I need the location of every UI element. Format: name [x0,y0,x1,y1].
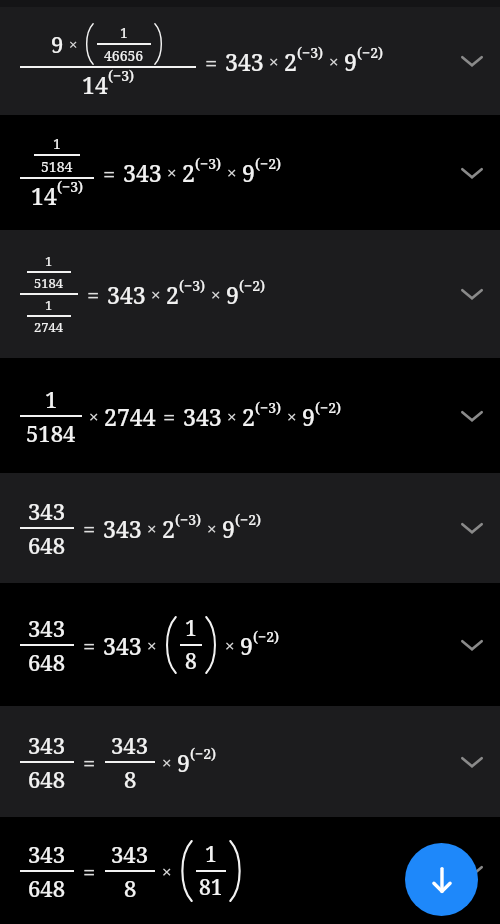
staticText: (−2) [255,154,282,173]
staticText: 343 [28,730,66,760]
button[interactable]: Collapse step [452,153,492,193]
staticText: 2 [182,157,195,188]
staticText: 14 [82,69,108,100]
staticText: 8 [124,873,137,903]
staticText: (−3) [57,177,84,196]
staticText: 343 [111,839,149,869]
staticText: 1 [205,840,217,869]
button[interactable]: Collapse step [452,41,492,81]
staticText: × [147,634,157,657]
staticText: 46656 [104,46,144,65]
button[interactable]: 1 [0,230,500,358]
staticText: 9 [177,747,190,778]
staticText: × [147,517,157,540]
staticText: (−3) [297,43,324,62]
staticText: × [211,283,221,306]
staticText: 648 [28,530,66,560]
staticText: 81 [199,873,223,902]
staticText: × [162,751,172,774]
staticText: × [227,405,237,428]
staticText: 1 [45,252,53,270]
staticText: 5184 [26,418,76,448]
staticText: (−3) [175,510,202,529]
staticText: 343 [225,46,264,77]
staticText: 1 [53,134,61,153]
staticText: × [151,283,161,306]
staticText: 343 [111,730,149,760]
button[interactable]: 343 [0,817,500,924]
staticText: (−2) [190,744,217,763]
staticText: (−2) [239,276,266,295]
staticText: 2 [242,401,255,432]
button[interactable]: 343 [0,473,500,583]
staticText: 343 [103,630,142,661]
staticText: 9 [240,630,253,661]
button[interactable]: Collapse step [452,742,492,782]
staticText: = [83,747,96,777]
staticText: × [69,34,78,54]
staticText: (−3) [179,276,206,295]
button[interactable]: 1 [0,358,500,473]
staticText: 343 [28,613,66,643]
staticText: × [269,50,279,73]
staticText: (−2) [253,627,280,646]
staticText: (−2) [357,43,384,62]
staticText: 14 [31,180,57,211]
button[interactable]: 343 [0,583,500,706]
staticText: 2 [162,513,175,544]
staticText: (−2) [235,510,262,529]
staticText: (−3) [255,398,282,417]
staticText: = [83,856,96,886]
button[interactable]: 343 [0,706,500,817]
staticText: 1 [45,384,58,414]
staticText: 8 [185,647,197,676]
staticText: 2 [166,279,179,310]
staticText: 9 [302,401,315,432]
staticText: × [162,860,172,883]
staticText: × [207,517,217,540]
staticText: = [83,513,96,543]
staticText: 9 [226,279,239,310]
staticText: 648 [28,647,66,677]
staticText: = [103,158,116,188]
staticText: 5184 [41,157,73,176]
staticText: 2 [284,46,297,77]
staticText: = [87,279,100,309]
button[interactable]: Scroll to bottom [405,843,478,916]
staticText: 2744 [34,318,64,336]
staticText: 1 [120,23,128,42]
staticText: 343 [28,839,66,869]
staticText: = [163,401,176,431]
button[interactable]: Collapse step [452,274,492,314]
staticText: × [227,161,237,184]
staticText: 648 [28,873,66,903]
staticText: 2744 [104,401,156,432]
staticText: 9 [242,157,255,188]
staticText: 1 [185,614,197,643]
staticText: 9 [222,513,235,544]
staticText: 9 [344,46,357,77]
staticText: 1 [45,296,53,314]
staticText: 343 [28,496,66,526]
staticText: 648 [28,764,66,794]
button[interactable]: Collapse step [452,508,492,548]
staticText: 5184 [34,274,64,292]
staticText: 343 [107,279,146,310]
staticText: 9 [51,29,64,59]
staticText: (−3) [195,154,222,173]
staticText: × [167,161,177,184]
staticText: × [287,405,297,428]
button[interactable]: Collapse step [452,625,492,665]
staticText: = [205,47,218,77]
staticText: × [225,634,235,657]
staticText: (−3) [108,66,135,85]
button[interactable]: Collapse step [452,396,492,436]
button[interactable]: 1 [0,115,500,230]
staticText: 343 [103,513,142,544]
staticText: = [83,630,96,660]
staticText: × [89,405,99,428]
staticText: (−2) [315,398,342,417]
button[interactable]: 9 [0,7,500,115]
button[interactable]: Collapse step [452,851,492,891]
staticText: 343 [183,401,222,432]
